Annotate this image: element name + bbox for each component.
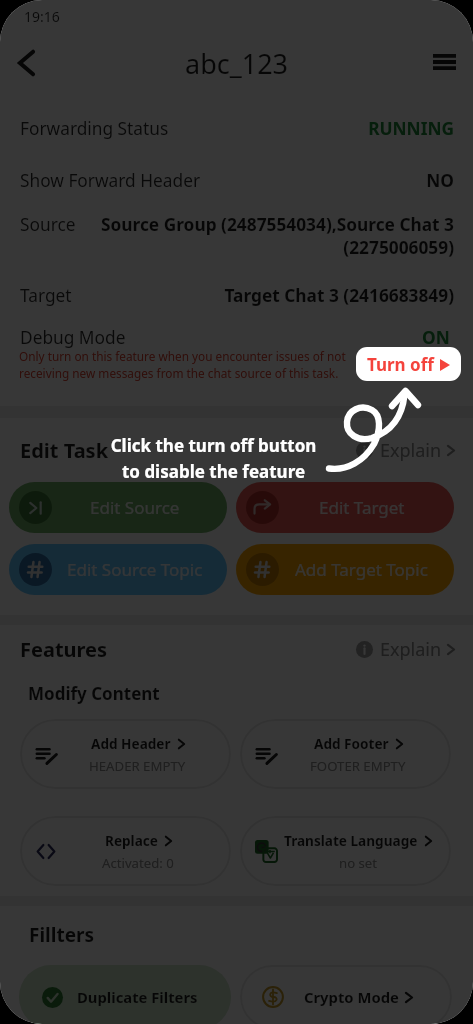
button[interactable]: Add Footer	[240, 719, 451, 789]
button[interactable]: Explain	[356, 637, 455, 662]
staticText: Source Group (2487554034),Source Chat 3 …	[86, 213, 454, 259]
button[interactable]: Add Target Topic	[236, 544, 454, 595]
button[interactable]: Turn off	[356, 347, 461, 381]
button[interactable]: Edit Source	[9, 482, 227, 533]
staticText: RUNNING	[179, 117, 454, 141]
staticText: Activated: 0	[102, 854, 174, 872]
staticText: FOOTER EMPTY	[310, 757, 406, 775]
staticText: Edit Source	[90, 496, 180, 519]
staticText: Explain	[380, 438, 442, 463]
button[interactable]: Duplicate Filters	[19, 965, 231, 1024]
staticText: HEADER EMPTY	[89, 757, 186, 775]
staticText: Target Chat 3 (2416683849)	[82, 284, 454, 308]
staticText: ON	[422, 326, 450, 350]
button[interactable]: Crypto Mode	[240, 965, 452, 1024]
staticText: Crypto Mode	[304, 987, 399, 1007]
button[interactable]: Replace	[20, 816, 231, 886]
staticText: no set	[339, 854, 378, 872]
button[interactable]: Back	[2, 39, 50, 87]
button[interactable]: Edit Target	[236, 482, 454, 533]
staticText: Explain	[380, 637, 442, 662]
staticText: Forwarding Status	[20, 117, 169, 141]
button[interactable]: Add Header	[20, 719, 231, 789]
staticText: Add Target Topic	[295, 558, 428, 581]
button[interactable]: Edit Source Topic	[9, 544, 227, 595]
staticText: Edit Target	[319, 496, 405, 519]
staticText: Edit Source Topic	[67, 558, 203, 581]
staticText: Only turn on this feature when you encou…	[19, 348, 363, 381]
staticText: Replace	[105, 831, 158, 850]
button[interactable]: Explain	[356, 438, 455, 463]
staticText: Features	[20, 636, 108, 663]
button[interactable]: Translate Language	[240, 816, 451, 886]
staticText: abc_123	[185, 45, 289, 82]
button[interactable]: Menu	[420, 38, 468, 86]
staticText: Duplicate Filters	[77, 987, 198, 1007]
staticText: Fillters	[29, 922, 95, 948]
staticText: Click the turn off button to disable the…	[108, 434, 319, 483]
staticText: Add Footer	[314, 734, 389, 753]
staticText: Turn off	[367, 353, 434, 376]
staticText: Debug Mode	[20, 326, 126, 350]
staticText: Modify Content	[28, 682, 160, 705]
staticText: Edit Task	[20, 437, 109, 464]
staticText: 19:16	[24, 7, 60, 26]
staticText: Target	[20, 284, 72, 308]
staticText: Show Forward Header	[20, 169, 201, 193]
staticText: Add Header	[91, 734, 171, 753]
staticText: Source	[20, 213, 76, 237]
staticText: Translate Language	[284, 831, 418, 850]
staticText: NO	[211, 169, 454, 193]
